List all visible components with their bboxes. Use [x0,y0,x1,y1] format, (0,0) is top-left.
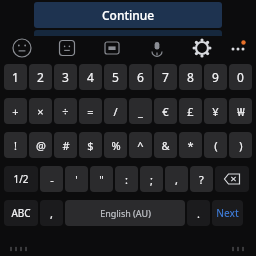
button[interactable]: Voice input [144,36,170,60]
staticText: ; [150,172,153,187]
staticText: English (AU) [100,207,151,219]
staticText: $ [87,138,94,153]
staticText: 3 [62,69,69,85]
button[interactable]: , [165,166,188,192]
staticText: ABC [11,206,31,220]
button[interactable]: + [4,98,27,124]
button[interactable]: Emoji [9,36,35,60]
staticText: ^ [137,138,144,153]
button[interactable]: 1 [4,64,27,90]
button[interactable]: . [187,200,210,226]
staticText: Continue [102,7,155,23]
button[interactable]: ABC [4,200,38,226]
staticText: 4 [87,69,94,85]
button[interactable]: ¥ [204,98,227,124]
button[interactable]: English (AU) [65,200,185,226]
button[interactable]: £ [179,98,202,124]
staticText: - [50,172,54,187]
staticText: 5 [112,69,119,85]
button[interactable]: * [179,132,202,158]
button[interactable]: Clipboard [99,36,125,60]
staticText: ₩ [237,104,245,119]
staticText: % [111,138,121,153]
button[interactable]: Next [212,200,243,226]
staticText: , [50,206,53,221]
staticText: £ [187,104,194,119]
staticText: 8 [187,69,194,85]
staticText: ? [199,172,204,187]
button[interactable]: $ [79,132,102,158]
button[interactable]: More options [225,36,251,60]
button[interactable]: 7 [154,64,177,90]
staticText: 0 [237,69,244,85]
staticText: ( [214,138,218,153]
staticText: / [113,104,118,119]
staticText: 6 [137,69,144,85]
button[interactable]: " [90,166,113,192]
staticText: × [37,104,44,119]
staticText: * [187,138,194,153]
button[interactable]: / [104,98,127,124]
button[interactable]: Continue [34,2,222,28]
button[interactable]: € [154,98,177,124]
button[interactable]: Backspace [215,166,249,192]
staticText: € [162,104,169,119]
button[interactable]: Stickers [54,36,80,60]
button[interactable]: # [54,132,77,158]
button[interactable]: @ [29,132,52,158]
button[interactable]: : [115,166,138,192]
button[interactable]: 6 [129,64,152,90]
staticText: & [161,138,170,153]
button[interactable]: 1/2 [4,166,38,192]
staticText: ÷ [62,104,69,119]
button[interactable]: & [154,132,177,158]
staticText: ' [75,172,78,187]
staticText: " [99,172,104,187]
button[interactable]: ! [4,132,27,158]
button[interactable]: 2 [29,64,52,90]
button[interactable]: ( [204,132,227,158]
staticText: # [62,138,70,153]
button[interactable]: , [40,200,63,226]
staticText: 1/2 [13,172,29,186]
button[interactable]: ) [229,132,252,158]
staticText: 2 [37,69,44,85]
button[interactable]: ? [190,166,213,192]
button[interactable]: 8 [179,64,202,90]
staticText: 1 [12,69,19,85]
button[interactable]: 4 [79,64,102,90]
button[interactable]: - [40,166,63,192]
button[interactable]: ' [65,166,88,192]
button[interactable]: 5 [104,64,127,90]
button[interactable]: 0 [229,64,252,90]
staticText: . [197,206,200,221]
staticText: : [125,172,128,187]
staticText: _ [138,104,143,119]
button[interactable]: × [29,98,52,124]
staticText: + [12,104,19,119]
button[interactable]: ; [140,166,163,192]
staticText: ) [239,138,243,153]
staticText: @ [36,138,46,153]
staticText: 7 [162,69,169,85]
button[interactable]: _ [129,98,152,124]
button[interactable]: 9 [204,64,227,90]
button[interactable]: ÷ [54,98,77,124]
staticText: ¥ [212,104,219,119]
staticText: = [87,104,94,119]
button[interactable]: = [79,98,102,124]
button[interactable]: Settings [189,36,215,60]
staticText: 9 [212,69,219,85]
staticText: , [175,172,178,187]
button[interactable]: ^ [129,132,152,158]
button[interactable]: % [104,132,127,158]
button[interactable]: 3 [54,64,77,90]
staticText: ! [14,138,17,153]
staticText: Next [216,206,239,220]
button[interactable]: ₩ [229,98,252,124]
